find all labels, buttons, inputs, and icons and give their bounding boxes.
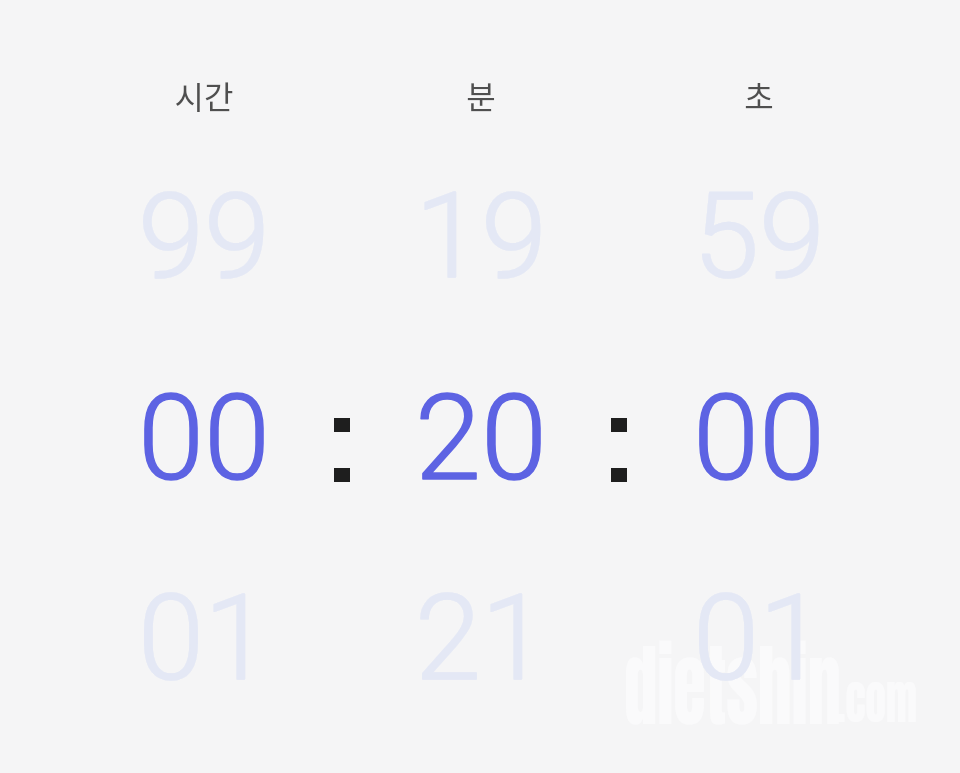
staticText: dietshin xyxy=(624,618,842,753)
button[interactable]: 시간 xyxy=(104,72,304,118)
button[interactable]: 초 01 xyxy=(669,562,849,692)
button[interactable]: 시간 01 xyxy=(114,562,294,692)
staticText: 59 xyxy=(559,167,959,306)
button[interactable]: 초 00 xyxy=(669,360,849,490)
button[interactable]: 분 19 xyxy=(391,160,571,290)
button[interactable]: 분 21 xyxy=(391,562,571,692)
staticText: 01 xyxy=(4,569,404,708)
staticText: 19 xyxy=(281,167,681,306)
staticText: 01 xyxy=(559,569,959,708)
staticText: 21 xyxy=(281,569,681,708)
staticText: 01 xyxy=(4,569,404,708)
staticText: 99 xyxy=(4,167,404,306)
button[interactable]: 초 xyxy=(659,72,859,118)
staticText: 00 xyxy=(559,369,959,508)
staticText: 59 xyxy=(559,167,959,306)
staticText: 19 xyxy=(281,167,681,306)
button[interactable]: 시간 00 xyxy=(114,360,294,490)
staticText: 00 xyxy=(559,369,959,508)
button[interactable]: 초 59 xyxy=(669,160,849,290)
staticText: 21 xyxy=(281,569,681,708)
staticText: 20 xyxy=(281,369,681,508)
staticText: 99 xyxy=(4,167,404,306)
staticText: 01 xyxy=(559,569,959,708)
button[interactable]: 시간 99 xyxy=(114,160,294,290)
staticText: 20 xyxy=(281,369,681,508)
staticText: 00 xyxy=(4,369,404,508)
button[interactable]: 분 20 xyxy=(391,360,571,490)
button[interactable]: 분 xyxy=(381,72,581,118)
staticText: 00 xyxy=(4,369,404,508)
